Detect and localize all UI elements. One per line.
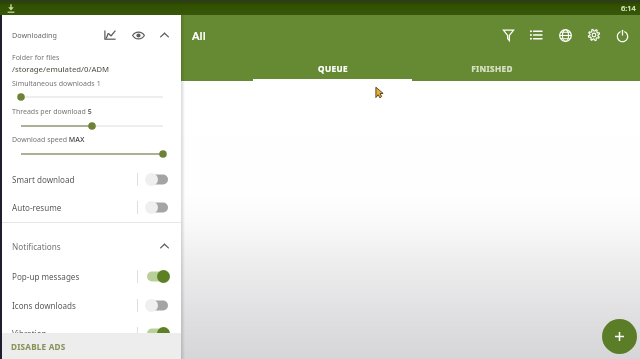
button[interactable]: [0, 120, 181, 132]
staticText: Smart download: [12, 174, 75, 185]
button[interactable]: Browser: [551, 21, 579, 49]
staticText: All: [192, 28, 206, 44]
button[interactable]: Filter: [494, 21, 522, 49]
button[interactable]: Power: [608, 21, 636, 49]
button[interactable]: Statistics: [100, 25, 120, 45]
button[interactable]: Notifications: [0, 233, 181, 259]
button[interactable]: Collapse downloading: [154, 25, 174, 45]
button[interactable]: Collapse notifications: [154, 236, 174, 256]
staticText: Auto-resume: [12, 202, 62, 213]
button[interactable]: List: [522, 21, 550, 49]
staticText: Simultaneous downloads: [12, 79, 95, 89]
button[interactable]: FINISHED: [412, 51, 571, 81]
staticText: Downloading: [12, 30, 57, 40]
button[interactable]: DISABLE ADS: [0, 333, 181, 359]
staticText: Pop-up messages: [12, 271, 80, 282]
button[interactable]: Downloading: [0, 21, 181, 49]
button[interactable]: Preview: [128, 25, 148, 45]
button[interactable]: [0, 91, 181, 103]
staticText: FINISHED: [471, 63, 513, 74]
staticText: Icons downloads: [12, 300, 76, 311]
staticText: 1: [95, 79, 101, 89]
button[interactable]: Settings: [580, 21, 608, 49]
button[interactable]: Vibration: [0, 319, 181, 347]
button[interactable]: Pop-up messages: [0, 262, 181, 290]
button[interactable]: Smart download: [0, 165, 181, 193]
staticText: Notifications: [12, 241, 61, 252]
staticText: Vibration: [12, 328, 47, 339]
staticText: 6:14: [621, 3, 636, 13]
button[interactable]: Icons downloads: [0, 291, 181, 319]
staticText: 5: [86, 107, 92, 117]
staticText: QUEUE: [318, 63, 348, 74]
staticText: Threads per download: [12, 107, 86, 117]
staticText: DISABLE ADS: [11, 341, 66, 352]
button[interactable]: Add download: [602, 319, 637, 354]
staticText: Download speed: [12, 135, 67, 145]
button[interactable]: [0, 148, 181, 160]
staticText: /storage/emulated/0/ADM: [12, 64, 110, 74]
button[interactable]: Auto-resume: [0, 193, 181, 221]
staticText: Folder for files: [12, 53, 60, 63]
staticText: MAX: [67, 135, 85, 145]
button[interactable]: QUEUE: [253, 51, 412, 81]
